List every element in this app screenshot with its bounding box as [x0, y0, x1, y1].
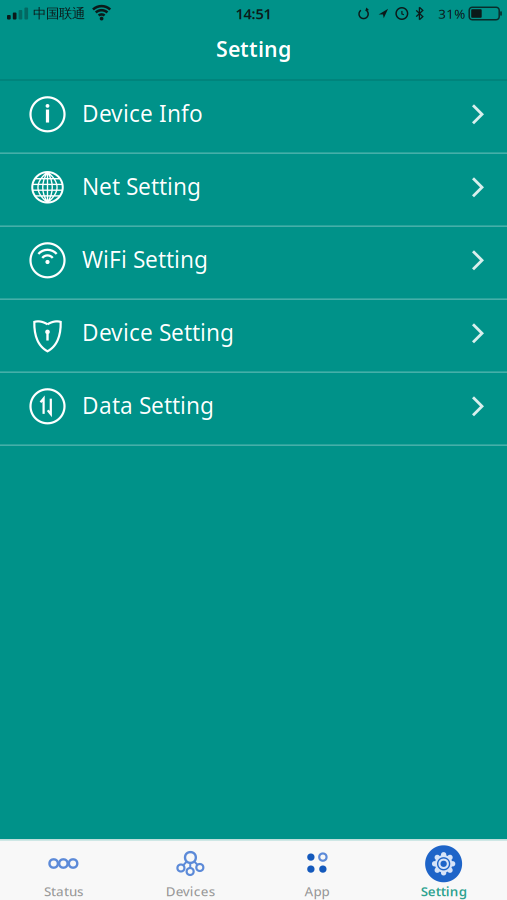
staticText: Devices	[166, 882, 215, 900]
button[interactable]: Status	[0, 840, 127, 900]
staticText: Device Info	[82, 98, 203, 128]
button[interactable]: Devices	[127, 840, 254, 900]
staticText: Net Setting	[82, 171, 201, 201]
button[interactable]: App	[253, 840, 380, 900]
staticText: 31%	[438, 5, 465, 22]
button[interactable]: Data Setting	[0, 373, 507, 446]
button[interactable]: Net Setting	[0, 154, 507, 227]
staticText: 中国联通	[33, 5, 85, 22]
staticText: 14:51	[235, 4, 271, 23]
staticText: Data Setting	[82, 390, 214, 420]
button[interactable]: Device Setting	[0, 300, 507, 373]
staticText: App	[304, 882, 329, 900]
button[interactable]: Setting	[380, 840, 507, 900]
button[interactable]: Device Info	[0, 81, 507, 154]
staticText: Setting	[421, 882, 467, 900]
staticText: Status	[44, 882, 83, 900]
staticText: Device Setting	[82, 317, 234, 347]
staticText: Setting	[216, 34, 291, 63]
button[interactable]: WiFi Setting	[0, 227, 507, 300]
staticText: WiFi Setting	[82, 244, 208, 274]
